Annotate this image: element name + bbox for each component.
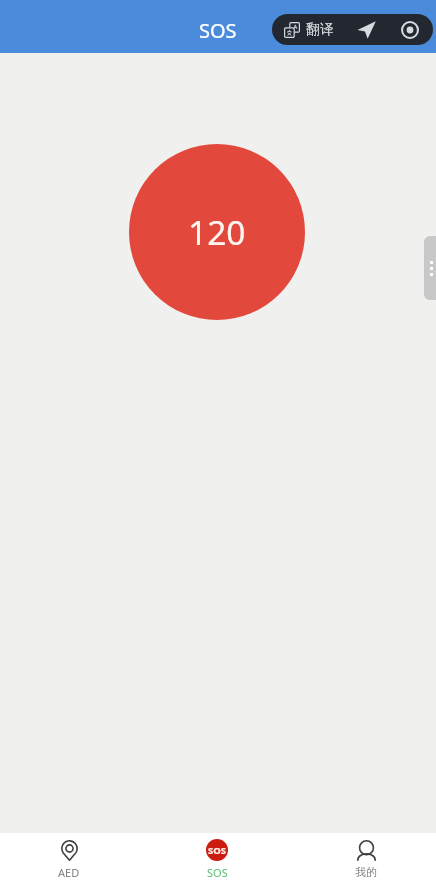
staticText: 120 <box>188 209 246 255</box>
staticText: 我的 <box>355 865 377 879</box>
button[interactable]: Location <box>345 14 387 45</box>
staticText: 翻译 <box>306 21 334 39</box>
button[interactable]: More <box>389 14 431 45</box>
button[interactable]: Panel handle <box>424 236 436 300</box>
button[interactable]: 翻译 <box>278 14 346 45</box>
button[interactable]: AED <box>19 833 119 896</box>
button[interactable]: 120 <box>129 144 305 320</box>
staticText: AED <box>58 865 80 880</box>
staticText: SOS <box>207 865 228 880</box>
button[interactable]: SOS <box>167 833 267 896</box>
button[interactable]: 我的 <box>316 833 416 896</box>
staticText: SOS <box>199 17 237 44</box>
staticText: SOS <box>208 844 226 857</box>
